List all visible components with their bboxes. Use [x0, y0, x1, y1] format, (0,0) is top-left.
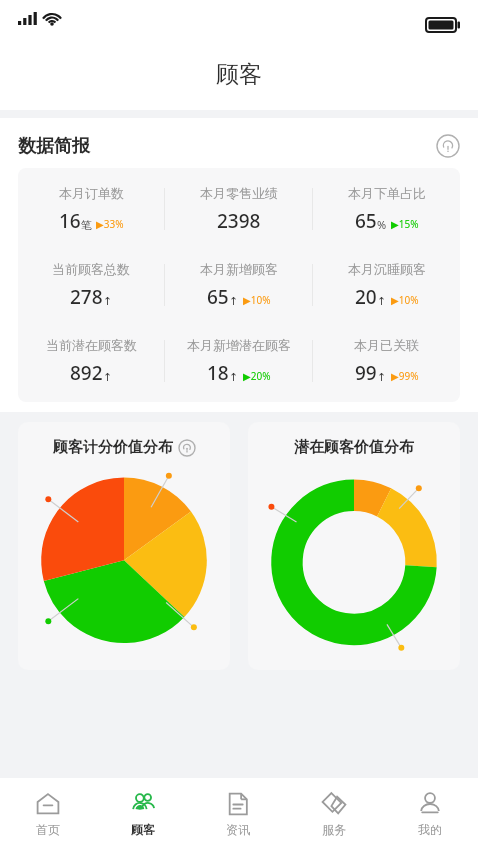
- staticText: 65: [355, 208, 377, 234]
- button[interactable]: 顾客: [95, 778, 190, 850]
- button[interactable]: 首页: [0, 778, 95, 850]
- staticText: ▶10%: [243, 293, 271, 307]
- staticText: 潜在顾客价值分布: [294, 438, 414, 457]
- staticText: ↑: [377, 371, 387, 384]
- staticText: 65: [207, 284, 229, 310]
- staticText: 本月沉睡顾客: [348, 261, 426, 277]
- staticText: 892: [70, 360, 103, 386]
- staticText: ▶10%: [391, 293, 419, 307]
- staticText: ▶15%: [391, 217, 419, 231]
- staticText: 服务: [322, 822, 346, 837]
- staticText: 99: [355, 360, 377, 386]
- staticText: ↑: [103, 371, 113, 384]
- staticText: 数据简报: [18, 135, 90, 158]
- staticText: 本月已关联: [354, 337, 419, 353]
- staticText: 本月新增顾客: [200, 261, 278, 277]
- staticText: 18: [207, 360, 229, 386]
- staticText: 顾客: [216, 60, 262, 89]
- staticText: 当前顾客总数: [52, 261, 130, 277]
- staticText: 本月零售业绩: [200, 185, 278, 201]
- staticText: 顾客计分价值分布: [53, 438, 173, 457]
- staticText: ▶99%: [391, 369, 419, 383]
- button[interactable]: 服务: [286, 778, 382, 850]
- staticText: 首页: [36, 822, 60, 837]
- staticText: 20: [355, 284, 377, 310]
- staticText: ↑: [229, 295, 239, 308]
- button[interactable]: 我的: [382, 778, 478, 850]
- staticText: 当前潜在顾客数: [46, 337, 137, 353]
- staticText: ▶20%: [243, 369, 271, 383]
- staticText: 笔: [81, 218, 92, 232]
- button[interactable]: 资讯: [190, 778, 286, 850]
- staticText: 顾客: [131, 822, 155, 837]
- staticText: ↑: [103, 295, 113, 308]
- staticText: ↑: [377, 295, 387, 308]
- staticText: 16: [59, 208, 81, 234]
- button[interactable]: 潜在顾客价值分布: [248, 422, 460, 670]
- button[interactable]: 帮助: [436, 134, 460, 158]
- staticText: 资讯: [226, 822, 250, 837]
- staticText: 本月订单数: [59, 185, 124, 201]
- staticText: 278: [70, 284, 103, 310]
- staticText: 我的: [418, 822, 442, 837]
- staticText: ▶33%: [96, 217, 124, 231]
- staticText: %: [377, 217, 387, 232]
- button[interactable]: 顾客计分价值分布: [18, 422, 230, 670]
- staticText: 2398: [217, 208, 261, 234]
- staticText: ↑: [229, 371, 239, 384]
- staticText: 本月新增潜在顾客: [187, 337, 291, 353]
- staticText: 本月下单占比: [348, 185, 426, 201]
